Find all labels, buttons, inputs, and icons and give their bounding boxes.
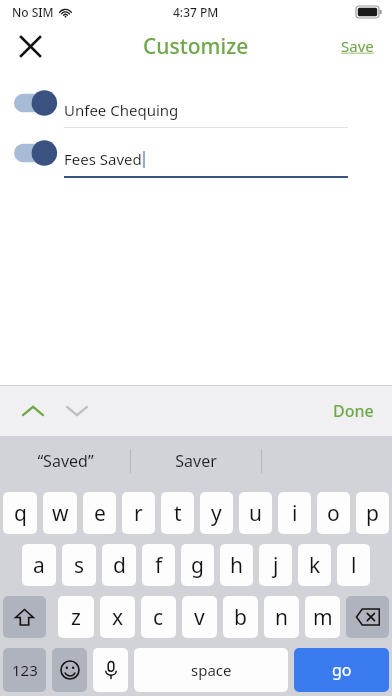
button[interactable]: g bbox=[181, 544, 214, 586]
button[interactable]: r bbox=[122, 492, 155, 534]
button[interactable]: h bbox=[220, 544, 253, 586]
staticText: o bbox=[327, 499, 340, 528]
button[interactable]: “Saved” bbox=[0, 436, 130, 486]
button[interactable]: Backspace bbox=[346, 596, 389, 638]
staticText: Unfee Chequing bbox=[64, 100, 179, 120]
staticText: n bbox=[275, 603, 288, 632]
button[interactable]: q bbox=[3, 492, 37, 534]
button[interactable]: Shift bbox=[3, 596, 46, 638]
staticText: 4:37 PM bbox=[173, 4, 219, 20]
button[interactable]: Next field bbox=[58, 392, 96, 430]
button[interactable]: k bbox=[298, 544, 331, 586]
staticText: Saver bbox=[175, 450, 217, 472]
button[interactable]: b bbox=[223, 596, 258, 638]
staticText: Done bbox=[333, 400, 374, 422]
staticText: go bbox=[332, 659, 352, 681]
button[interactable]: s bbox=[62, 544, 96, 586]
staticText: k bbox=[309, 551, 321, 580]
staticText: g bbox=[191, 551, 204, 580]
staticText: Customize bbox=[143, 32, 249, 61]
button[interactable]: y bbox=[200, 492, 233, 534]
button[interactable]: space bbox=[134, 648, 288, 692]
staticText: h bbox=[230, 551, 243, 580]
button[interactable]: Previous field bbox=[14, 392, 52, 430]
button[interactable]: i bbox=[278, 492, 311, 534]
button[interactable]: Toggle Fees Saved bbox=[14, 136, 64, 170]
button[interactable]: j bbox=[259, 544, 292, 586]
staticText: r bbox=[134, 499, 143, 528]
button[interactable]: Done bbox=[329, 396, 378, 426]
button[interactable]: t bbox=[161, 492, 194, 534]
staticText: “Saved” bbox=[37, 450, 94, 472]
staticText: a bbox=[33, 551, 45, 580]
staticText: c bbox=[153, 603, 164, 632]
button[interactable]: d bbox=[102, 544, 136, 586]
staticText: t bbox=[174, 499, 182, 528]
staticText: f bbox=[155, 551, 163, 580]
button[interactable]: l bbox=[337, 544, 370, 586]
button[interactable]: Save bbox=[335, 30, 380, 62]
button[interactable]: Close bbox=[8, 24, 52, 68]
staticText: s bbox=[74, 551, 85, 580]
button[interactable]: n bbox=[264, 596, 299, 638]
button[interactable]: a bbox=[22, 544, 56, 586]
staticText: p bbox=[366, 499, 379, 528]
staticText: m bbox=[313, 603, 333, 632]
staticText: space bbox=[191, 660, 232, 680]
staticText: No SIM bbox=[12, 4, 54, 20]
button[interactable]: c bbox=[141, 596, 176, 638]
button[interactable]: u bbox=[239, 492, 272, 534]
staticText: Save bbox=[341, 36, 374, 56]
button[interactable]: v bbox=[182, 596, 217, 638]
staticText: v bbox=[194, 603, 205, 632]
staticText: x bbox=[112, 603, 124, 632]
button[interactable]: Dictation bbox=[93, 648, 128, 692]
staticText: j bbox=[273, 551, 279, 580]
button[interactable]: Saver bbox=[131, 436, 261, 486]
staticText: u bbox=[249, 499, 262, 528]
staticText: q bbox=[14, 499, 27, 528]
button[interactable]: 123 bbox=[3, 648, 46, 692]
button[interactable]: f bbox=[142, 544, 175, 586]
staticText: Fees Saved bbox=[64, 149, 142, 169]
button[interactable]: m bbox=[305, 596, 340, 638]
staticText: b bbox=[234, 603, 247, 632]
staticText: 123 bbox=[12, 660, 38, 680]
staticText: d bbox=[113, 551, 126, 580]
button[interactable]: Toggle Unfee Chequing bbox=[14, 86, 64, 120]
staticText: w bbox=[52, 499, 69, 528]
button[interactable]: Emoji bbox=[52, 648, 87, 692]
button[interactable]: e bbox=[83, 492, 116, 534]
button[interactable]: w bbox=[43, 492, 77, 534]
staticText: l bbox=[351, 551, 357, 580]
button[interactable]: go bbox=[294, 648, 389, 692]
staticText: i bbox=[292, 499, 298, 528]
button[interactable]: p bbox=[356, 492, 389, 534]
staticText: z bbox=[71, 603, 81, 632]
staticText: e bbox=[94, 499, 106, 528]
button[interactable]: x bbox=[100, 596, 135, 638]
button[interactable]: z bbox=[58, 596, 94, 638]
staticText: y bbox=[211, 499, 222, 528]
button[interactable]: o bbox=[317, 492, 350, 534]
